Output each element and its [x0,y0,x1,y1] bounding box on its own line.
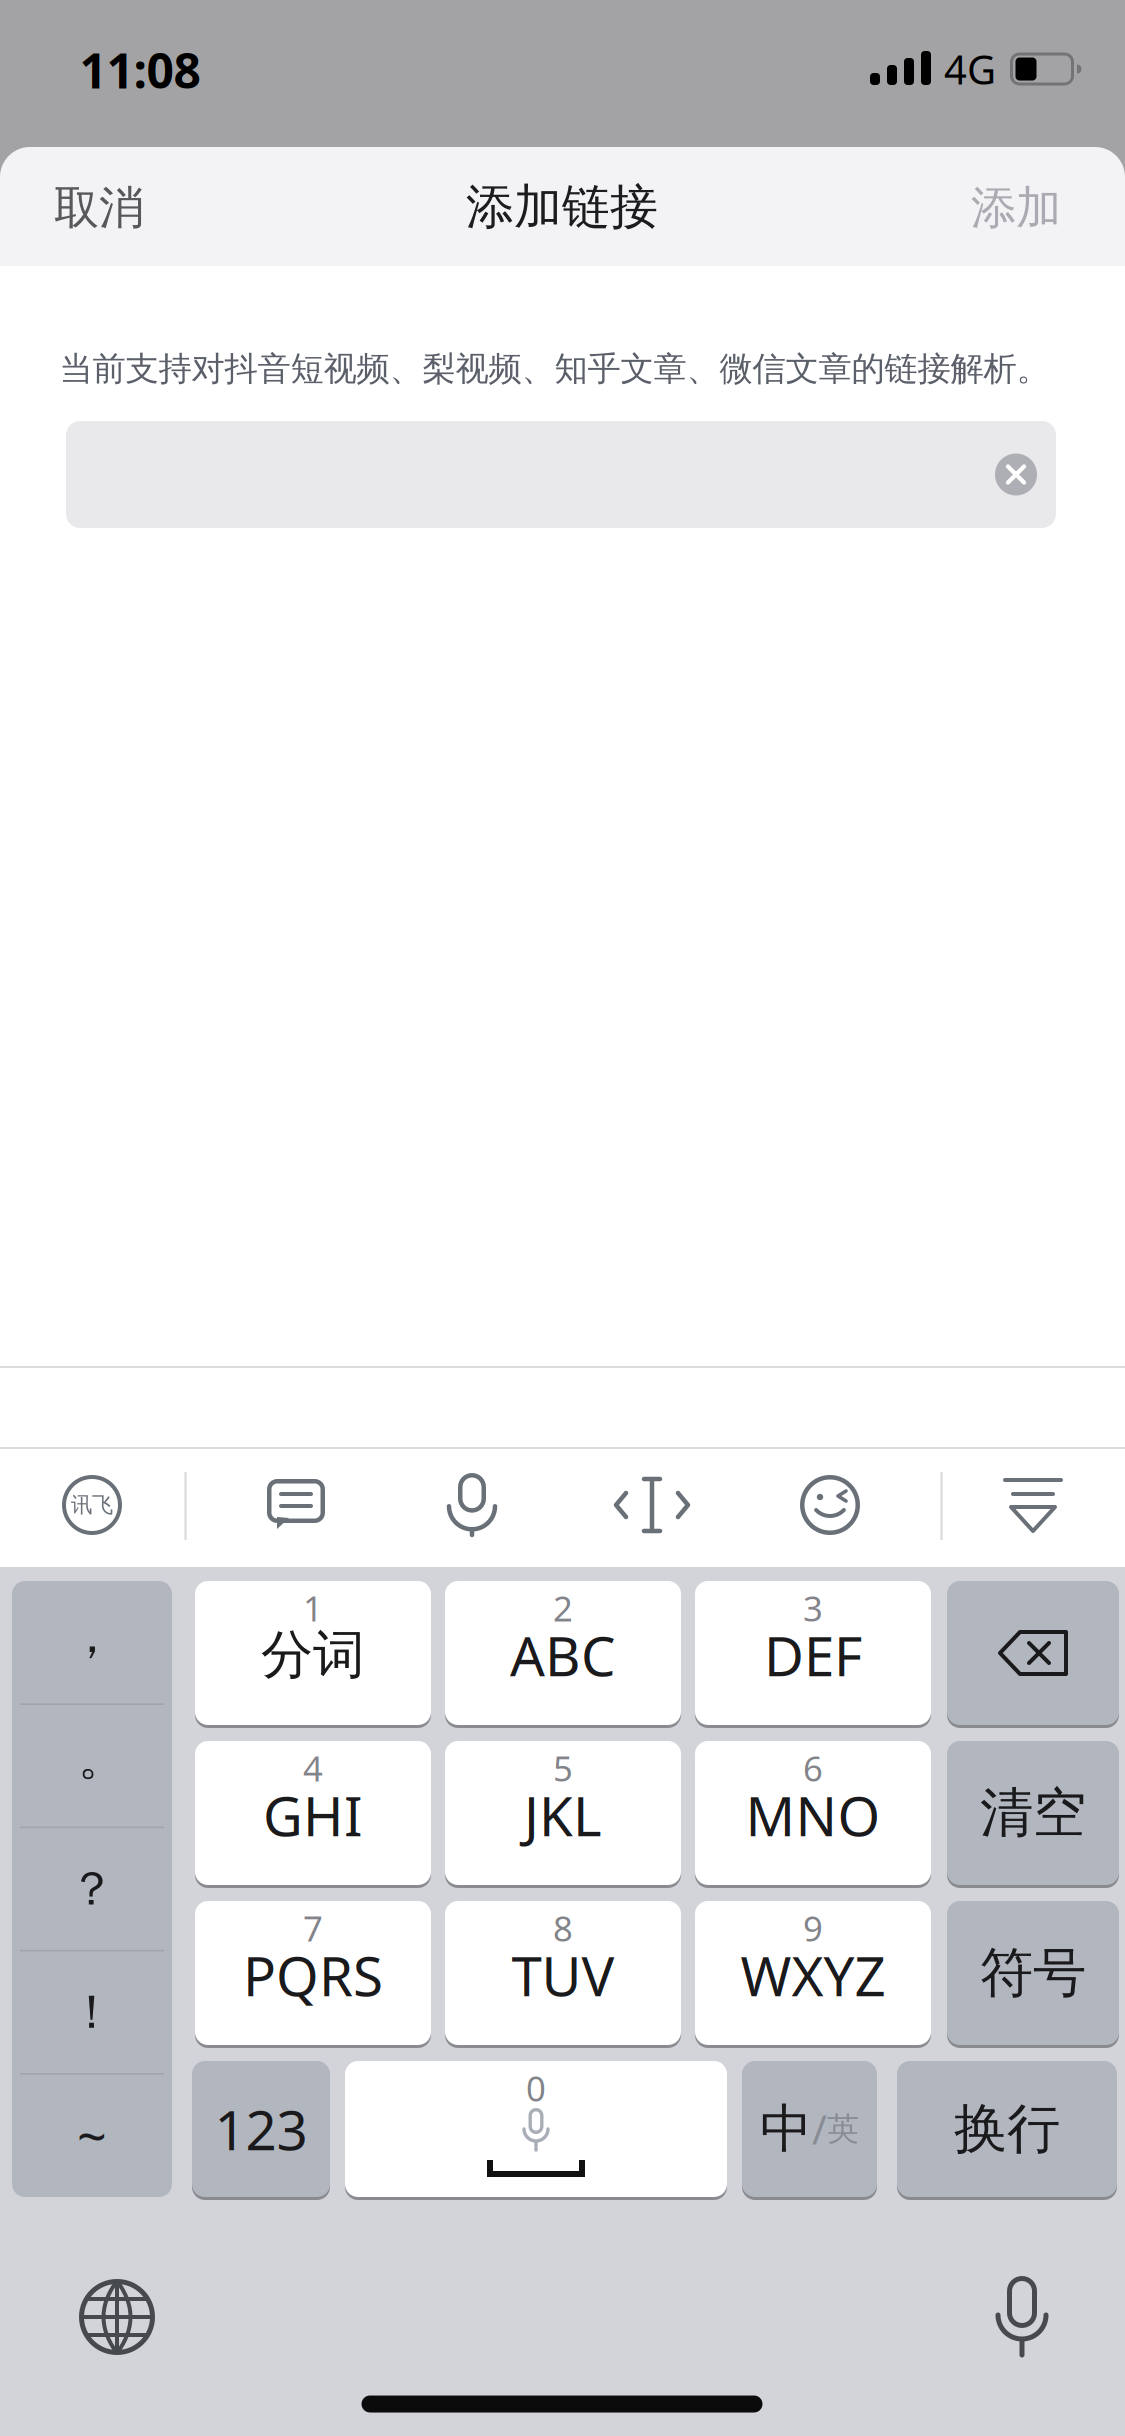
staticText: 1 [303,1585,323,1631]
staticText: 英 [827,2109,859,2149]
staticText: 7 [303,1905,323,1951]
button[interactable]: 1 [195,1581,431,1725]
staticText: 8 [553,1905,573,1951]
staticText: ~ [77,2101,107,2170]
button[interactable]: 。 [22,1696,182,1819]
staticText: 0 [526,2065,546,2111]
button[interactable]: ， [12,1574,172,1697]
staticText: 清空 [980,1780,1086,1846]
staticText: ！ [68,1983,115,2041]
staticText: 中 [760,2097,812,2161]
button[interactable]: 添加 [971,180,1061,236]
button[interactable]: 8 [445,1901,681,2045]
button[interactable]: ~ [12,2074,172,2197]
button[interactable]: 讯飞输入法 [60,1473,124,1537]
button[interactable]: 符号 [947,1901,1119,2045]
staticText: ， [68,1606,116,1665]
staticText: 讯飞 [71,1492,113,1518]
button[interactable]: 4 [195,1741,431,1885]
button[interactable]: 换行 [897,2061,1117,2197]
staticText: 分词 [261,1623,365,1687]
staticText: DEF [764,1619,862,1691]
staticText: JKL [524,1779,602,1851]
button[interactable]: 6 [695,1741,931,1885]
button[interactable]: 链接输入框 [66,421,1056,528]
button[interactable]: 收起键盘 [1003,1474,1065,1536]
staticText: 9 [803,1905,823,1951]
button[interactable]: 语音输入 [448,1470,496,1540]
staticText: MNO [745,1779,880,1851]
button[interactable]: 0 [345,2061,727,2197]
staticText: ？ [68,1860,115,1918]
staticText: ABC [510,1619,616,1691]
button[interactable]: 切换输入法 [78,2278,156,2356]
staticText: 4 [303,1745,323,1791]
button[interactable]: 光标移动 [614,1475,690,1535]
staticText: WXYZ [740,1939,885,2011]
button[interactable]: 表情 [799,1474,861,1536]
staticText: 2 [553,1585,573,1631]
staticText: 6 [803,1745,823,1791]
button[interactable]: 5 [445,1741,681,1885]
staticText: 添加 [971,180,1061,236]
button[interactable]: 清空 [947,1741,1119,1885]
staticText: 5 [553,1745,573,1791]
button[interactable]: 123 [192,2061,330,2197]
button[interactable]: 常用语 [265,1477,327,1533]
staticText: 换行 [954,2096,1060,2162]
staticText: 添加链接 [466,177,658,236]
staticText: 3 [803,1585,823,1631]
staticText: 当前支持对抖音短视频、梨视频、知乎文章、微信文章的链接解析。 [59,348,1049,389]
staticText: PQRS [243,1939,383,2011]
button[interactable]: 2 [445,1581,681,1725]
button[interactable]: 7 [195,1901,431,2045]
staticText: 123 [214,2093,307,2165]
staticText: TUV [511,1939,614,2011]
button[interactable]: ？ [12,1827,172,1950]
staticText: 取消 [54,180,144,236]
button[interactable]: ！ [12,1951,172,2074]
button[interactable]: 删除 [947,1581,1119,1725]
button[interactable]: 3 [695,1581,931,1725]
staticText: 符号 [980,1940,1086,2006]
staticText: / [812,2102,827,2155]
staticText: GHI [263,1779,363,1851]
button[interactable]: 取消 [54,180,144,236]
button[interactable]: 清除 [995,453,1037,495]
staticText: 。 [78,1728,126,1787]
staticText: 4G [944,42,996,95]
staticText: 11:08 [79,38,200,102]
button[interactable]: 中 [742,2061,877,2197]
button[interactable]: 听写 [990,2275,1054,2359]
button[interactable]: 9 [695,1901,931,2045]
